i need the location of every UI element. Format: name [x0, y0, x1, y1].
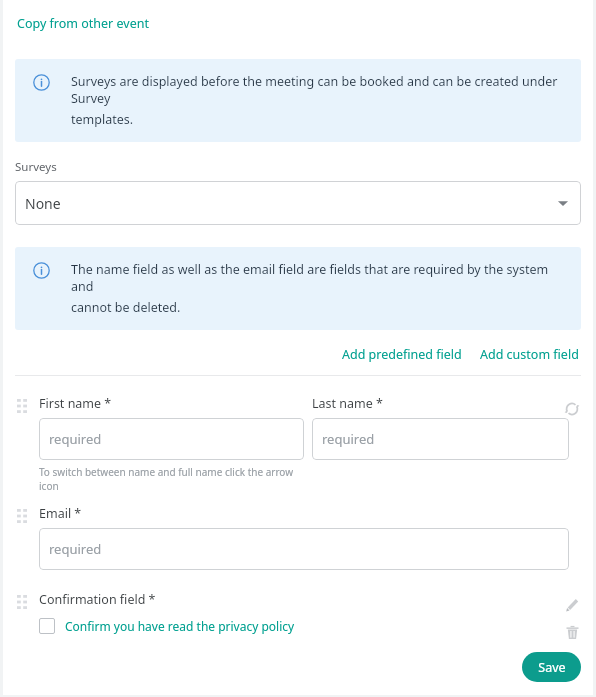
staticText: required: [49, 540, 102, 558]
staticText: Surveys are displayed before the meeting…: [71, 73, 569, 107]
staticText: Add predefined field: [342, 346, 462, 363]
staticText: Last name *: [312, 395, 383, 412]
button[interactable]: required: [39, 418, 304, 460]
staticText: Add custom field: [480, 346, 579, 363]
staticText: None: [25, 194, 61, 213]
button[interactable]: Confirm you have read the privacy policy: [39, 618, 295, 634]
button[interactable]: Edit: [559, 591, 585, 617]
button[interactable]: Drag to reorder: [17, 399, 27, 413]
staticText: Save: [538, 659, 566, 676]
button[interactable]: Drag to reorder: [17, 595, 27, 609]
staticText: Confirmation field *: [39, 591, 156, 608]
staticText: Copy from other event: [17, 15, 149, 32]
button[interactable]: Delete: [559, 619, 585, 645]
staticText: To switch between name and full name cli…: [39, 465, 304, 493]
staticText: cannot be deleted.: [71, 299, 181, 316]
staticText: templates.: [71, 111, 134, 128]
button[interactable]: required: [312, 418, 569, 460]
button[interactable]: None: [15, 181, 581, 225]
staticText: required: [322, 430, 375, 448]
staticText: Surveys: [15, 159, 57, 175]
button[interactable]: Add predefined field: [340, 343, 464, 366]
button[interactable]: Copy from other event: [15, 13, 151, 34]
staticText: required: [49, 430, 102, 448]
button[interactable]: Add custom field: [478, 343, 581, 366]
button[interactable]: Drag to reorder: [17, 509, 27, 523]
staticText: Email *: [39, 505, 82, 522]
staticText: First name *: [39, 395, 112, 412]
button[interactable]: Save: [522, 652, 581, 682]
button[interactable]: required: [39, 528, 569, 570]
staticText: Confirm you have read the privacy policy: [65, 618, 295, 634]
button[interactable]: Switch name field: [559, 396, 585, 422]
staticText: The name field as well as the email fiel…: [71, 261, 569, 295]
